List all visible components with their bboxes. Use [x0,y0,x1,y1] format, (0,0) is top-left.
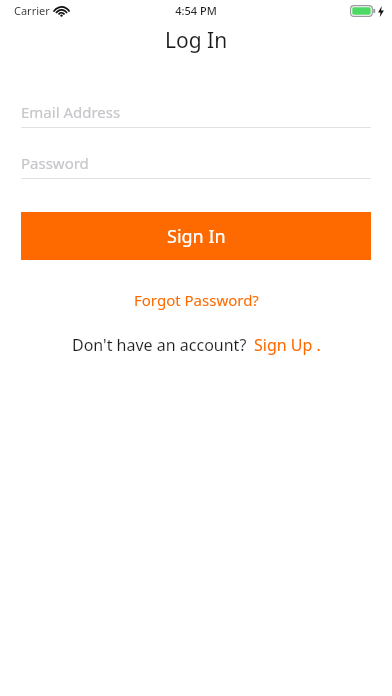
button[interactable]: Email Address [21,97,371,128]
staticText: Sign Up . [254,334,321,356]
staticText: Email Address [21,102,121,122]
staticText: 4:54 PM [175,3,217,18]
staticText: Forgot Password? [134,290,259,310]
staticText: Carrier [14,3,50,18]
button[interactable]: Sign In [21,212,371,260]
staticText: Log In [165,26,228,55]
button[interactable]: Sign Up . [254,334,321,356]
staticText: Sign In [167,224,226,249]
staticText: Don't have an account? [72,334,247,356]
staticText: Password [21,153,89,173]
button[interactable]: Password [21,148,371,179]
button[interactable]: Forgot Password? [126,286,267,314]
